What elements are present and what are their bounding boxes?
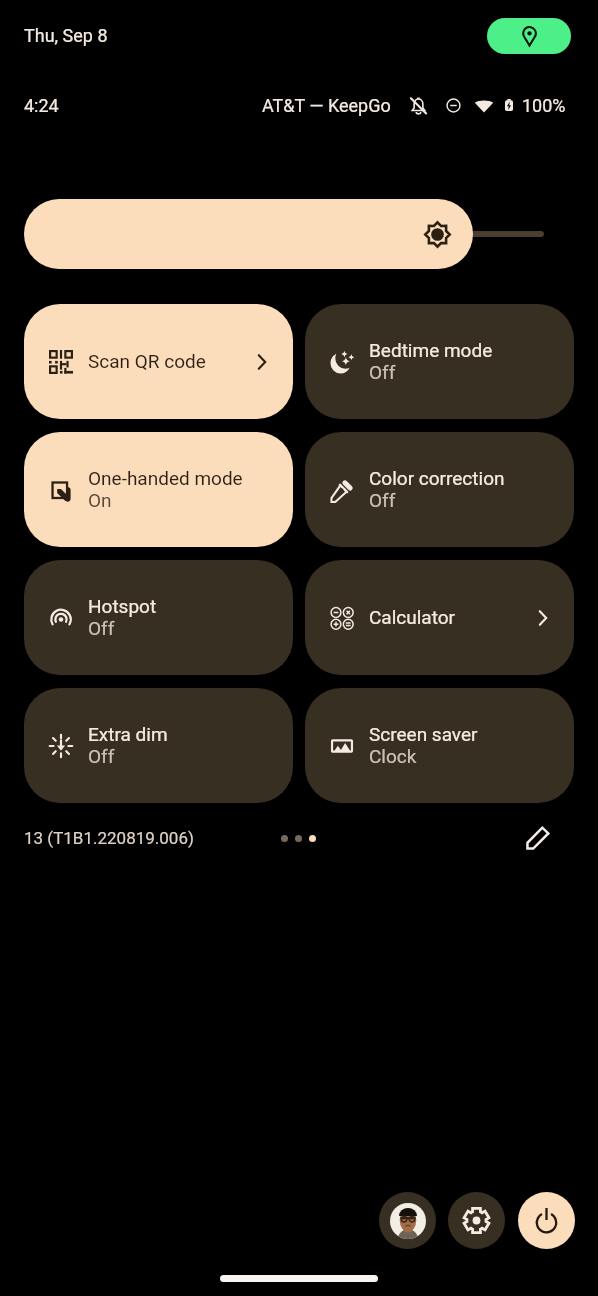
- staticText: One-handed mode: [88, 467, 243, 489]
- staticText: On: [88, 489, 112, 511]
- staticText: Off: [369, 361, 396, 383]
- staticText: Hotspot: [88, 595, 157, 617]
- button[interactable]: Bedtime mode: [305, 304, 574, 419]
- staticText: Calculator: [369, 606, 456, 628]
- button[interactable]: Scan QR code: [24, 304, 293, 419]
- staticText: Off: [88, 617, 115, 639]
- staticText: Off: [369, 489, 396, 511]
- staticText: AT&T — KeepGo: [262, 95, 391, 116]
- staticText: Thu, Sep 8: [24, 25, 108, 46]
- button[interactable]: Hotspot: [24, 560, 293, 675]
- staticText: 13 (T1B1.220819.006): [24, 828, 194, 848]
- staticText: Clock: [369, 745, 417, 767]
- button[interactable]: Color correction: [305, 432, 574, 547]
- staticText: Color correction: [369, 467, 505, 489]
- button[interactable]: One-handed mode: [24, 432, 293, 547]
- staticText: 4:24: [24, 95, 59, 116]
- button[interactable]: Location in use: [487, 18, 571, 54]
- staticText: 100%: [522, 95, 566, 116]
- button[interactable]: Settings: [448, 1192, 505, 1249]
- button[interactable]: Extra dim: [24, 688, 293, 803]
- staticText: Screen saver: [369, 723, 478, 745]
- button[interactable]: Brightness: [24, 199, 473, 269]
- staticText: Off: [88, 745, 115, 767]
- button[interactable]: Calculator: [305, 560, 574, 675]
- button[interactable]: User avatar: [379, 1192, 436, 1249]
- staticText: Extra dim: [88, 723, 168, 745]
- button[interactable]: Power: [518, 1192, 575, 1249]
- staticText: Bedtime mode: [369, 339, 493, 361]
- button[interactable]: Screen saver: [305, 688, 574, 803]
- staticText: Scan QR code: [88, 350, 206, 372]
- button[interactable]: Edit tiles: [518, 818, 558, 858]
